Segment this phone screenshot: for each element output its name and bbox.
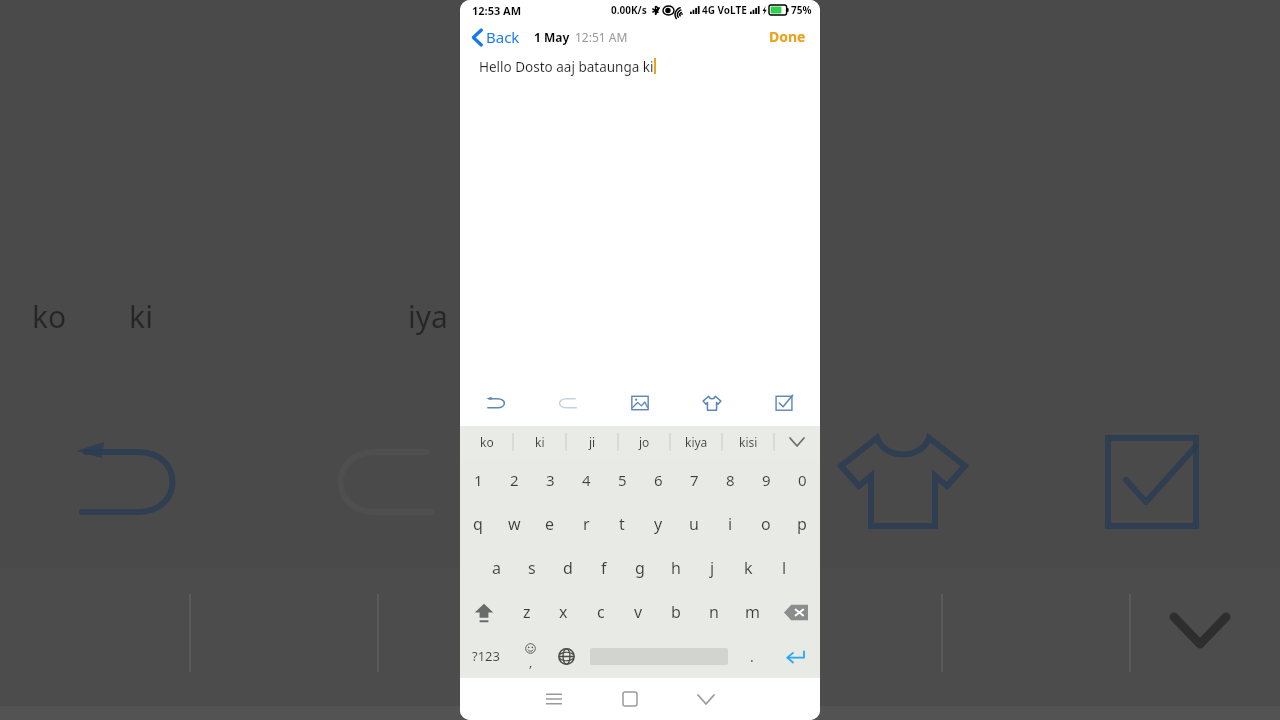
button[interactable]: p (784, 502, 820, 546)
staticText: t (619, 513, 625, 535)
button[interactable]: Backspace (771, 590, 820, 634)
staticText: 9 (762, 470, 771, 490)
staticText: f (601, 557, 607, 579)
staticText: 4G VoLTE (702, 3, 747, 17)
staticText: . (750, 647, 754, 666)
button[interactable]: Enter (770, 634, 820, 678)
staticText: h (671, 557, 681, 579)
button[interactable]: g (622, 546, 658, 590)
button[interactable]: 6 (640, 458, 676, 502)
staticText: Hello Dosto aaj bataunga ki (479, 58, 654, 76)
button[interactable]: 4 (568, 458, 604, 502)
button[interactable]: Checklist (748, 380, 820, 426)
staticText: 1 May (534, 29, 570, 45)
staticText: 7 (690, 470, 699, 490)
button[interactable]: 5 (604, 458, 640, 502)
staticText: i (728, 513, 733, 535)
staticText: ki (535, 434, 545, 450)
button[interactable]: r (568, 502, 604, 546)
button[interactable]: b (657, 590, 695, 634)
staticText: x (559, 601, 568, 623)
staticText: ko (0, 296, 109, 337)
button[interactable]: y (640, 502, 676, 546)
button[interactable]: j (694, 546, 730, 590)
button[interactable]: i (712, 502, 748, 546)
staticText: e (545, 513, 555, 535)
staticText: p (797, 513, 807, 535)
button[interactable]: ki (513, 426, 566, 458)
button[interactable]: Undo (460, 380, 532, 426)
staticText: v (634, 601, 643, 623)
button[interactable]: q (460, 502, 496, 546)
staticText: b (671, 601, 681, 623)
button[interactable]: kisi (722, 426, 774, 458)
button[interactable]: t (604, 502, 640, 546)
button[interactable]: f (586, 546, 622, 590)
button[interactable]: w (496, 502, 532, 546)
button[interactable]: 9 (748, 458, 784, 502)
button[interactable]: a (478, 546, 514, 590)
staticText: kisi (739, 434, 758, 450)
button[interactable]: 3 (532, 458, 568, 502)
staticText: d (563, 557, 573, 579)
button[interactable]: Insert image (604, 380, 676, 426)
staticText: jo (639, 434, 650, 450)
staticText: 1 (474, 470, 483, 490)
button[interactable]: x (545, 590, 582, 634)
staticText: 75% (791, 3, 812, 17)
button[interactable]: 2 (496, 458, 532, 502)
button[interactable]: Done (755, 21, 820, 52)
staticText: r (583, 513, 590, 535)
staticText: n (709, 601, 719, 623)
staticText: z (523, 601, 531, 623)
button[interactable]: Space (584, 634, 734, 678)
button[interactable]: n (695, 590, 733, 634)
staticText: 12:53 AM (472, 3, 522, 18)
button[interactable]: v (619, 590, 657, 634)
button[interactable]: Back (668, 678, 744, 720)
button[interactable]: ?123 (460, 634, 512, 678)
button[interactable]: kiya (670, 426, 722, 458)
button[interactable]: Shift (460, 590, 508, 634)
button[interactable]: 8 (712, 458, 748, 502)
button[interactable]: ko (460, 426, 513, 458)
button[interactable]: Home (592, 678, 668, 720)
staticText: ko (480, 434, 494, 450)
button[interactable]: h (658, 546, 694, 590)
button[interactable]: jo (618, 426, 670, 458)
button[interactable]: Recents (516, 678, 592, 720)
button[interactable]: Hello Dosto aaj bataunga ki (460, 53, 820, 380)
staticText: y (654, 513, 663, 535)
staticText: kiya (685, 434, 708, 450)
button[interactable]: 0 (784, 458, 820, 502)
button[interactable]: l (766, 546, 802, 590)
button[interactable]: s (514, 546, 550, 590)
button[interactable]: . (734, 634, 770, 678)
button[interactable]: m (733, 590, 771, 634)
staticText: w (508, 513, 521, 535)
staticText: 0 (798, 470, 807, 490)
button[interactable]: d (550, 546, 586, 590)
button[interactable]: Emoji and comma (512, 634, 548, 678)
button[interactable]: o (748, 502, 784, 546)
button[interactable]: 7 (676, 458, 712, 502)
staticText: ji (589, 434, 596, 450)
staticText: s (528, 557, 536, 579)
button[interactable]: z (508, 590, 545, 634)
button[interactable]: Redo (532, 380, 604, 426)
button[interactable]: k (730, 546, 766, 590)
button[interactable]: Sticker (676, 380, 748, 426)
staticText: k (744, 557, 753, 579)
button[interactable]: e (532, 502, 568, 546)
button[interactable]: 1 (460, 458, 496, 502)
staticText: 5 (618, 470, 627, 490)
button[interactable]: c (582, 590, 619, 634)
staticText: Back (486, 27, 520, 47)
button[interactable]: Back (472, 27, 520, 47)
button[interactable]: Change language (548, 634, 584, 678)
button[interactable]: ji (566, 426, 618, 458)
button[interactable]: u (676, 502, 712, 546)
staticText: 12:51 AM (575, 29, 628, 45)
button[interactable]: Hide suggestions (774, 426, 820, 458)
staticText: m (745, 601, 760, 623)
